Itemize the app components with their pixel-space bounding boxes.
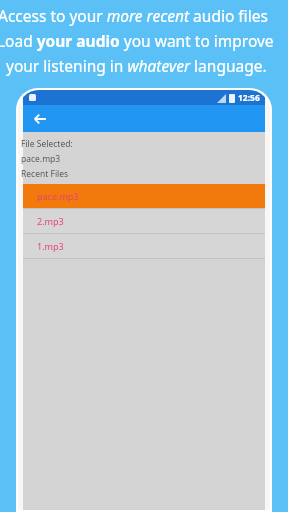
- button[interactable]: pace.mp3: [23, 184, 265, 208]
- staticText: your listening in whatever language.: [6, 55, 267, 76]
- staticText: pace.mp3: [21, 153, 61, 165]
- button[interactable]: 2.mp3: [23, 209, 265, 233]
- staticText: 1.mp3: [37, 240, 64, 252]
- staticText: Recent Files: [21, 168, 69, 180]
- button[interactable]: Back: [27, 106, 53, 132]
- staticText: pace.mp3: [37, 190, 79, 202]
- staticText: 12:56: [238, 92, 260, 104]
- staticText: File Selected:: [21, 138, 73, 150]
- staticText: Access to your more recent audio files: [0, 5, 268, 26]
- button[interactable]: 1.mp3: [23, 234, 265, 258]
- staticText: 2.mp3: [37, 215, 64, 227]
- staticText: Load your audio you want to improve: [0, 30, 274, 51]
